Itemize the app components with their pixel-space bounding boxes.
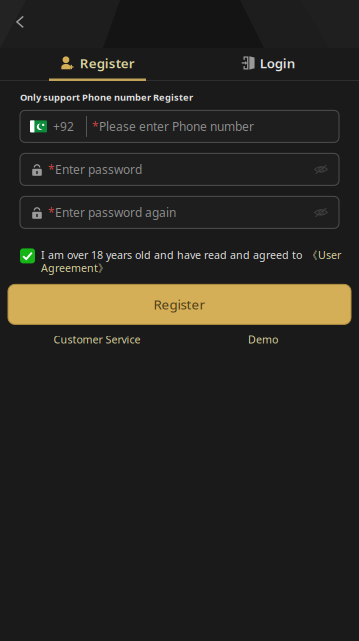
staticText: * xyxy=(48,204,55,220)
button[interactable]: Show password xyxy=(314,207,339,218)
staticText: Demo xyxy=(248,332,278,346)
staticText: Enter password xyxy=(55,161,142,177)
staticText: Only support Phone number Register xyxy=(20,91,193,103)
staticText: Please enter Phone number xyxy=(99,118,254,134)
staticText: Enter password again xyxy=(55,204,176,220)
staticText: Register xyxy=(80,54,135,72)
button[interactable]: Show password xyxy=(314,164,339,175)
staticText: * xyxy=(92,118,99,134)
button[interactable]: Login xyxy=(179,45,359,81)
staticText: * xyxy=(48,161,55,177)
staticText: Login xyxy=(260,54,296,72)
button[interactable]: Register xyxy=(0,45,179,81)
staticText: +92 xyxy=(53,118,74,134)
staticText: Register xyxy=(153,295,205,313)
button[interactable]: Register xyxy=(8,284,351,324)
staticText: 《User xyxy=(307,248,341,262)
staticText: Agreement》 xyxy=(41,261,109,275)
button[interactable]: Demo xyxy=(180,330,346,348)
staticText: Customer Service xyxy=(53,332,140,346)
button[interactable]: I am over 18 years old xyxy=(20,248,35,263)
button[interactable]: Back xyxy=(6,7,34,37)
button[interactable]: Customer Service xyxy=(14,330,180,348)
button[interactable]: I am over 18 years old and have read and… xyxy=(35,248,343,273)
staticText: I am over 18 years old and have read and… xyxy=(41,248,302,262)
